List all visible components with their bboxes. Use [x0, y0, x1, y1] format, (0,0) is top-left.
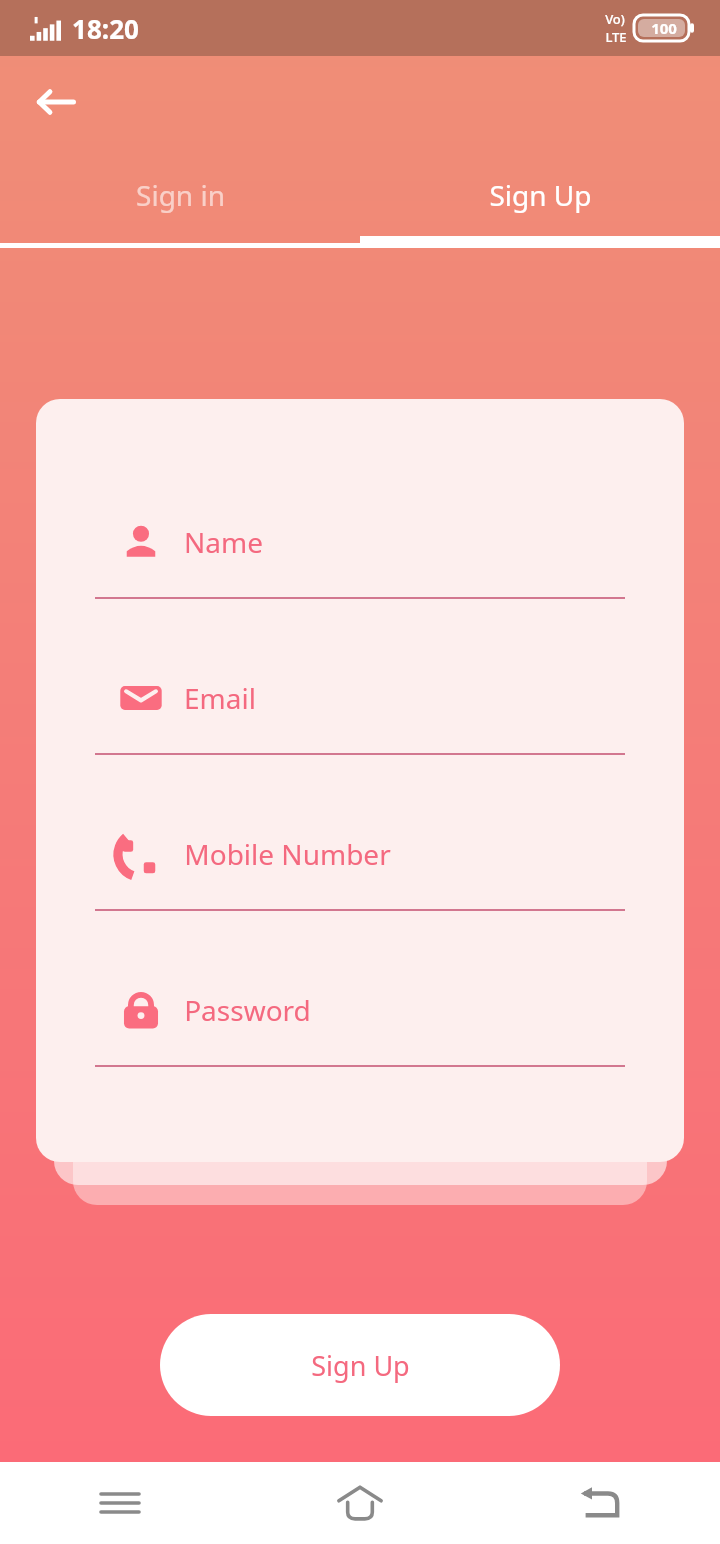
button[interactable]: Sign in — [0, 150, 360, 236]
staticText: 18:20 — [72, 11, 139, 46]
staticText: Email — [184, 679, 256, 717]
button[interactable]: Sign Up — [160, 1314, 560, 1416]
button[interactable]: Email — [36, 643, 684, 799]
button[interactable]: Back — [24, 70, 88, 134]
button[interactable]: Back — [480, 1462, 720, 1544]
staticText: Sign Up — [311, 1347, 410, 1384]
button[interactable]: Mobile Number — [36, 799, 684, 955]
button[interactable]: Name — [36, 487, 684, 643]
button[interactable]: Recent apps — [0, 1462, 240, 1544]
staticText: Vo) — [605, 10, 625, 28]
staticText: Sign Up — [489, 176, 592, 214]
staticText: Sign in — [136, 176, 225, 214]
staticText: 100 — [651, 18, 677, 38]
button[interactable]: Sign Up — [360, 150, 720, 236]
staticText: Password — [184, 991, 311, 1029]
staticText: LTE — [605, 28, 627, 46]
button[interactable]: Password — [36, 955, 684, 1111]
button[interactable]: Home — [240, 1462, 480, 1544]
staticText: Name — [184, 523, 263, 561]
staticText: Mobile Number — [184, 835, 391, 873]
